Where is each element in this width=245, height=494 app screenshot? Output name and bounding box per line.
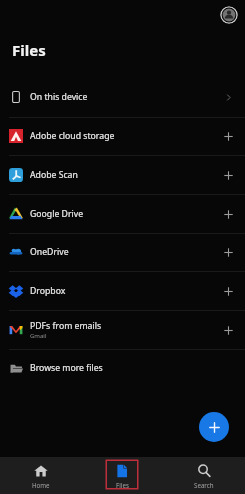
button[interactable]: Google Drive	[0, 195, 245, 233]
button[interactable]: New file	[199, 412, 229, 442]
button[interactable]: PDFs from emails	[0, 311, 245, 349]
staticText: Browse more files	[30, 362, 103, 374]
staticText: PDFs from emails	[30, 320, 102, 332]
staticText: Home	[32, 481, 50, 489]
staticText: On this device	[30, 91, 88, 103]
button[interactable]: Browse more files	[0, 349, 245, 387]
button[interactable]: Adobe Scan	[0, 156, 245, 194]
staticText: Files	[12, 40, 46, 60]
staticText: Gmail	[30, 332, 47, 340]
button[interactable]: Adobe cloud storage	[0, 117, 245, 155]
staticText: Adobe Scan	[30, 169, 78, 181]
button[interactable]: Search	[163, 457, 245, 494]
button[interactable]: On this device	[0, 78, 245, 116]
staticText: Dropbox	[30, 285, 66, 297]
button[interactable]: Files	[81, 457, 163, 494]
button[interactable]: Account	[220, 6, 238, 24]
button[interactable]: Dropbox	[0, 272, 245, 310]
staticText: Files	[116, 481, 129, 489]
button[interactable]: Home	[0, 457, 81, 494]
button[interactable]: OneDrive	[0, 233, 245, 271]
staticText: Adobe cloud storage	[30, 130, 115, 142]
staticText: Google Drive	[30, 208, 84, 220]
staticText: OneDrive	[30, 246, 69, 258]
staticText: Search	[194, 481, 214, 489]
